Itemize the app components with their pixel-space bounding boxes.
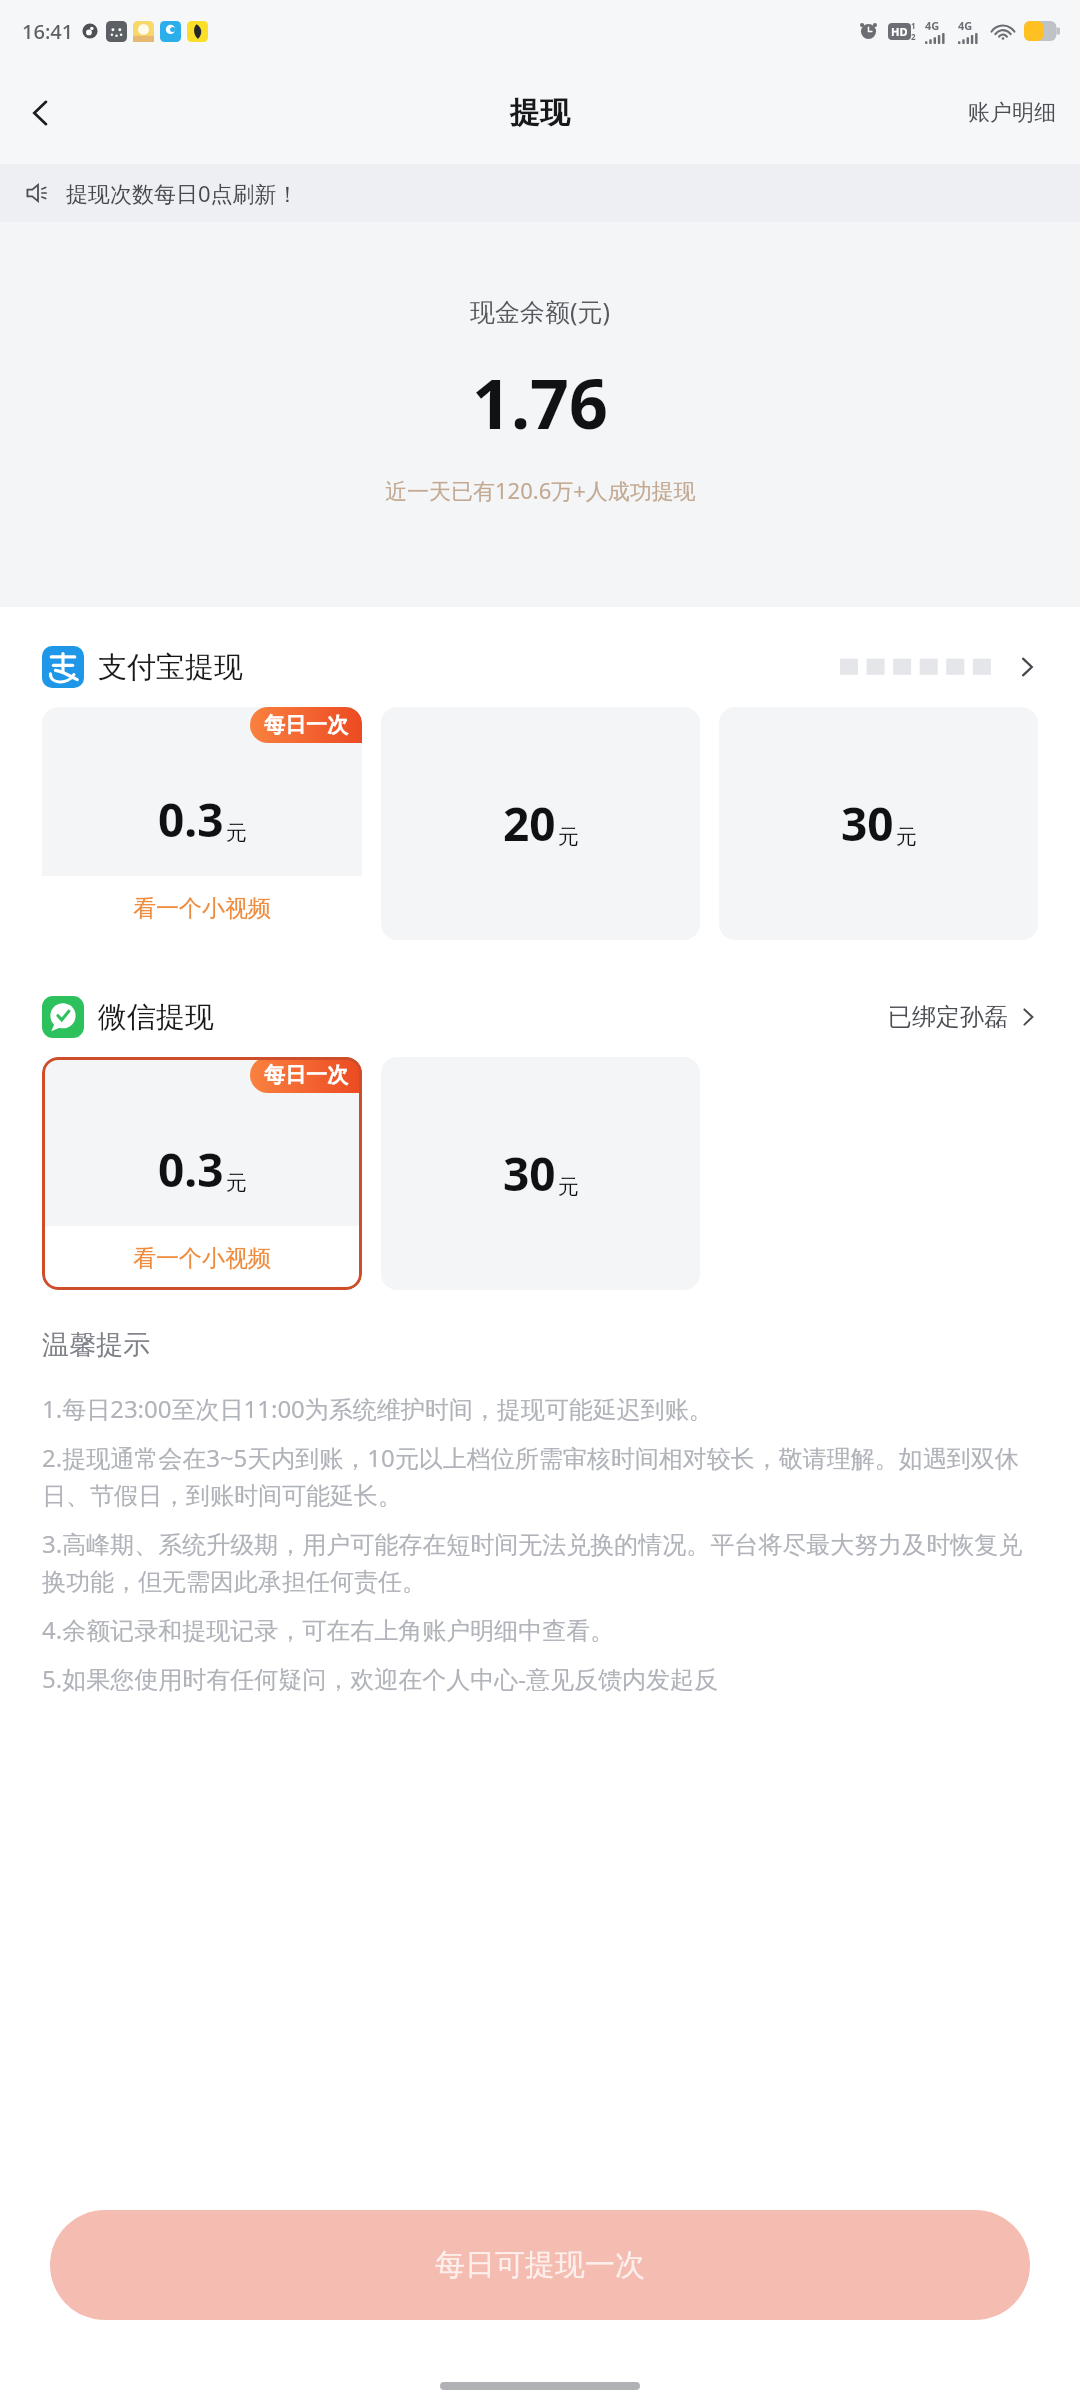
staticText: 元 (558, 1174, 579, 1200)
staticText: 4G (925, 18, 940, 33)
button[interactable]: 微信提现 (0, 990, 1080, 1044)
staticText: 元 (226, 1170, 247, 1196)
staticText: 30 (841, 792, 894, 855)
button[interactable]: 30 (381, 1057, 700, 1290)
button[interactable]: 20 (381, 707, 700, 940)
button[interactable]: 看一个小视频 (42, 1057, 362, 1290)
staticText: 现金余额(元) (470, 294, 611, 328)
button[interactable]: Back (10, 82, 72, 144)
staticText: 每日一次 (264, 1062, 348, 1088)
staticText: 2.提现通常会在3~5天内到账，10元以上档位所需审核时间相对较长，敬请理解。如… (42, 1441, 1038, 1511)
staticText: HD (891, 24, 908, 39)
staticText: 4G (958, 18, 973, 33)
button[interactable]: 账户明细 (944, 83, 1080, 143)
staticText: 3.高峰期、系统升级期，用户可能存在短时间无法兑换的情况。平台将尽最大努力及时恢… (42, 1527, 1038, 1597)
staticText: 2 (911, 31, 916, 42)
staticText: 温馨提示 (42, 1328, 150, 1362)
staticText: 支付宝提现 (98, 649, 243, 686)
button[interactable]: 每日可提现一次 (50, 2210, 1030, 2320)
button[interactable]: 看一个小视频 (42, 707, 362, 940)
button[interactable]: 支付宝提现 (0, 640, 1080, 694)
staticText: 30 (503, 1142, 556, 1205)
staticText: 提现 (510, 94, 570, 132)
staticText: 看一个小视频 (133, 1244, 271, 1273)
staticText: 元 (558, 824, 579, 850)
staticText: 4.余额记录和提现记录，可在右上角账户明细中查看。 (42, 1613, 615, 1646)
staticText: 看一个小视频 (133, 894, 271, 923)
staticText: 微信提现 (98, 999, 214, 1036)
staticText: 每日一次 (264, 712, 348, 738)
staticText: 1.每日23:00至次日11:00为系统维护时间，提现可能延迟到账。 (42, 1392, 713, 1425)
staticText: 近一天已有120.6万+人成功提现 (385, 475, 696, 505)
staticText: 每日可提现一次 (435, 2246, 645, 2284)
button[interactable]: 30 (719, 707, 1038, 940)
staticText: 提现次数每日0点刷新！ (66, 178, 299, 208)
staticText: 元 (896, 824, 917, 850)
staticText: 0.3 (158, 788, 224, 851)
staticText: 16:41 (22, 18, 74, 45)
staticText: 1.76 (472, 356, 608, 449)
staticText: 5.如果您使用时有任何疑问，欢迎在个人中心-意见反馈内发起反 (42, 1662, 718, 1695)
staticText: 0.3 (158, 1138, 224, 1201)
staticText: 1 (911, 20, 916, 31)
staticText: 元 (226, 820, 247, 846)
staticText: 已绑定孙磊 (888, 1002, 1008, 1032)
staticText: 账户明细 (968, 99, 1056, 127)
staticText: 20 (503, 792, 556, 855)
